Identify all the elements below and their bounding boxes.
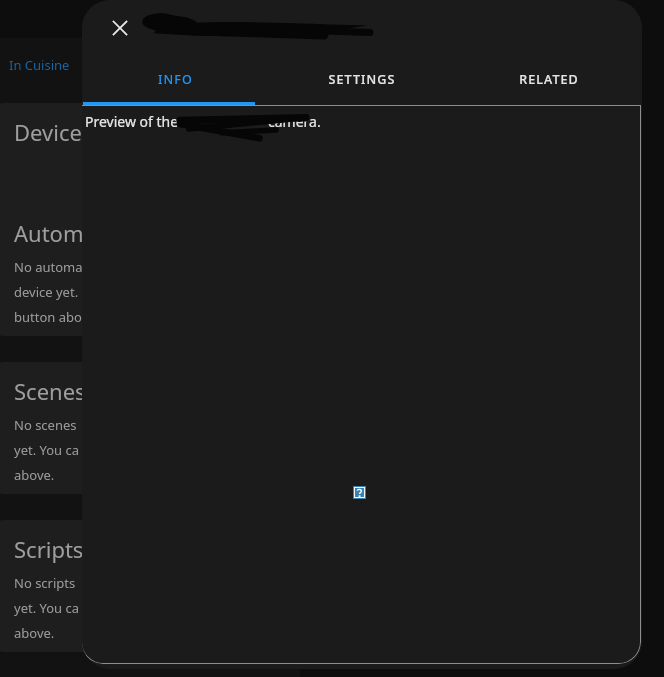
staticText: Preview of the	[85, 112, 182, 131]
staticText: No scenes	[14, 416, 77, 434]
button[interactable]: Devices	[0, 103, 292, 206]
staticText: Devices	[14, 117, 93, 147]
staticText: above.	[14, 624, 55, 642]
staticText: device yet.	[14, 283, 79, 301]
staticText: INFO	[158, 71, 193, 88]
staticText: yet. You ca	[14, 599, 80, 617]
staticText: SETTINGS	[328, 71, 396, 88]
button[interactable]: Scripts	[0, 520, 292, 652]
staticText: In Cuisine	[9, 56, 70, 74]
staticText: Scenes	[14, 376, 86, 406]
staticText: camera.	[268, 112, 321, 131]
staticText: yet. You ca	[14, 441, 80, 459]
button[interactable]: Automations	[0, 204, 292, 336]
button[interactable]: SETTINGS	[268, 56, 455, 102]
button[interactable]: Close	[102, 10, 138, 46]
button[interactable]: In Cuisine	[8, 55, 71, 75]
staticText: RELATED	[519, 71, 579, 88]
staticText: No automa	[14, 258, 83, 276]
staticText: Automations	[14, 218, 147, 248]
staticText: above.	[14, 466, 55, 484]
button[interactable]: RELATED	[455, 56, 642, 102]
staticText: button abo	[14, 308, 82, 326]
button[interactable]: INFO	[82, 56, 268, 102]
button[interactable]: Scenes	[0, 362, 292, 494]
staticText: Scripts	[14, 534, 84, 564]
staticText: No scripts	[14, 574, 76, 592]
